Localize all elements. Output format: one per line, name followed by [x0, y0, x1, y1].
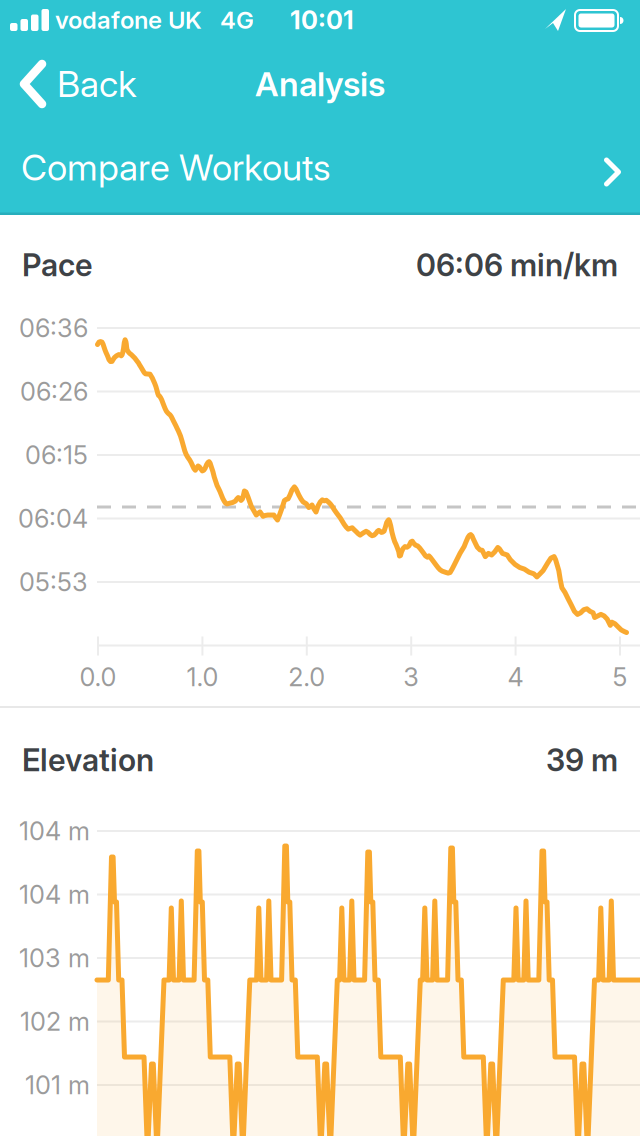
staticText: 4 — [508, 662, 524, 692]
staticText: Compare Workouts — [21, 146, 331, 189]
staticText: 104 m — [19, 880, 90, 909]
staticText: 05:53 — [19, 567, 88, 597]
staticText: 06:04 — [18, 504, 88, 533]
staticText: 4G — [220, 6, 254, 34]
staticText: 06:06 min/km — [416, 247, 618, 283]
staticText: 104 m — [19, 816, 90, 846]
staticText: 06:36 — [19, 313, 88, 343]
staticText: 06:15 — [25, 440, 88, 470]
staticText: Back — [57, 63, 137, 105]
staticText: Analysis — [255, 64, 385, 104]
staticText: 39 m — [546, 742, 618, 778]
staticText: 101 m — [25, 1070, 90, 1100]
staticText: 102 m — [20, 1007, 90, 1036]
button[interactable]: Compare Workouts — [21, 123, 619, 211]
staticText: 3 — [403, 662, 419, 692]
staticText: Elevation — [22, 742, 154, 778]
staticText: 1.0 — [186, 662, 218, 692]
staticText: 5 — [612, 662, 627, 692]
staticText: 10:01 — [290, 5, 354, 35]
staticText: 103 m — [19, 943, 90, 973]
staticText: vodafone UK — [55, 6, 202, 34]
staticText: 2.0 — [288, 662, 325, 692]
staticText: 0.0 — [79, 662, 116, 692]
button[interactable]: Back — [19, 60, 137, 108]
staticText: Pace — [22, 247, 93, 283]
staticText: 06:26 — [20, 377, 88, 406]
